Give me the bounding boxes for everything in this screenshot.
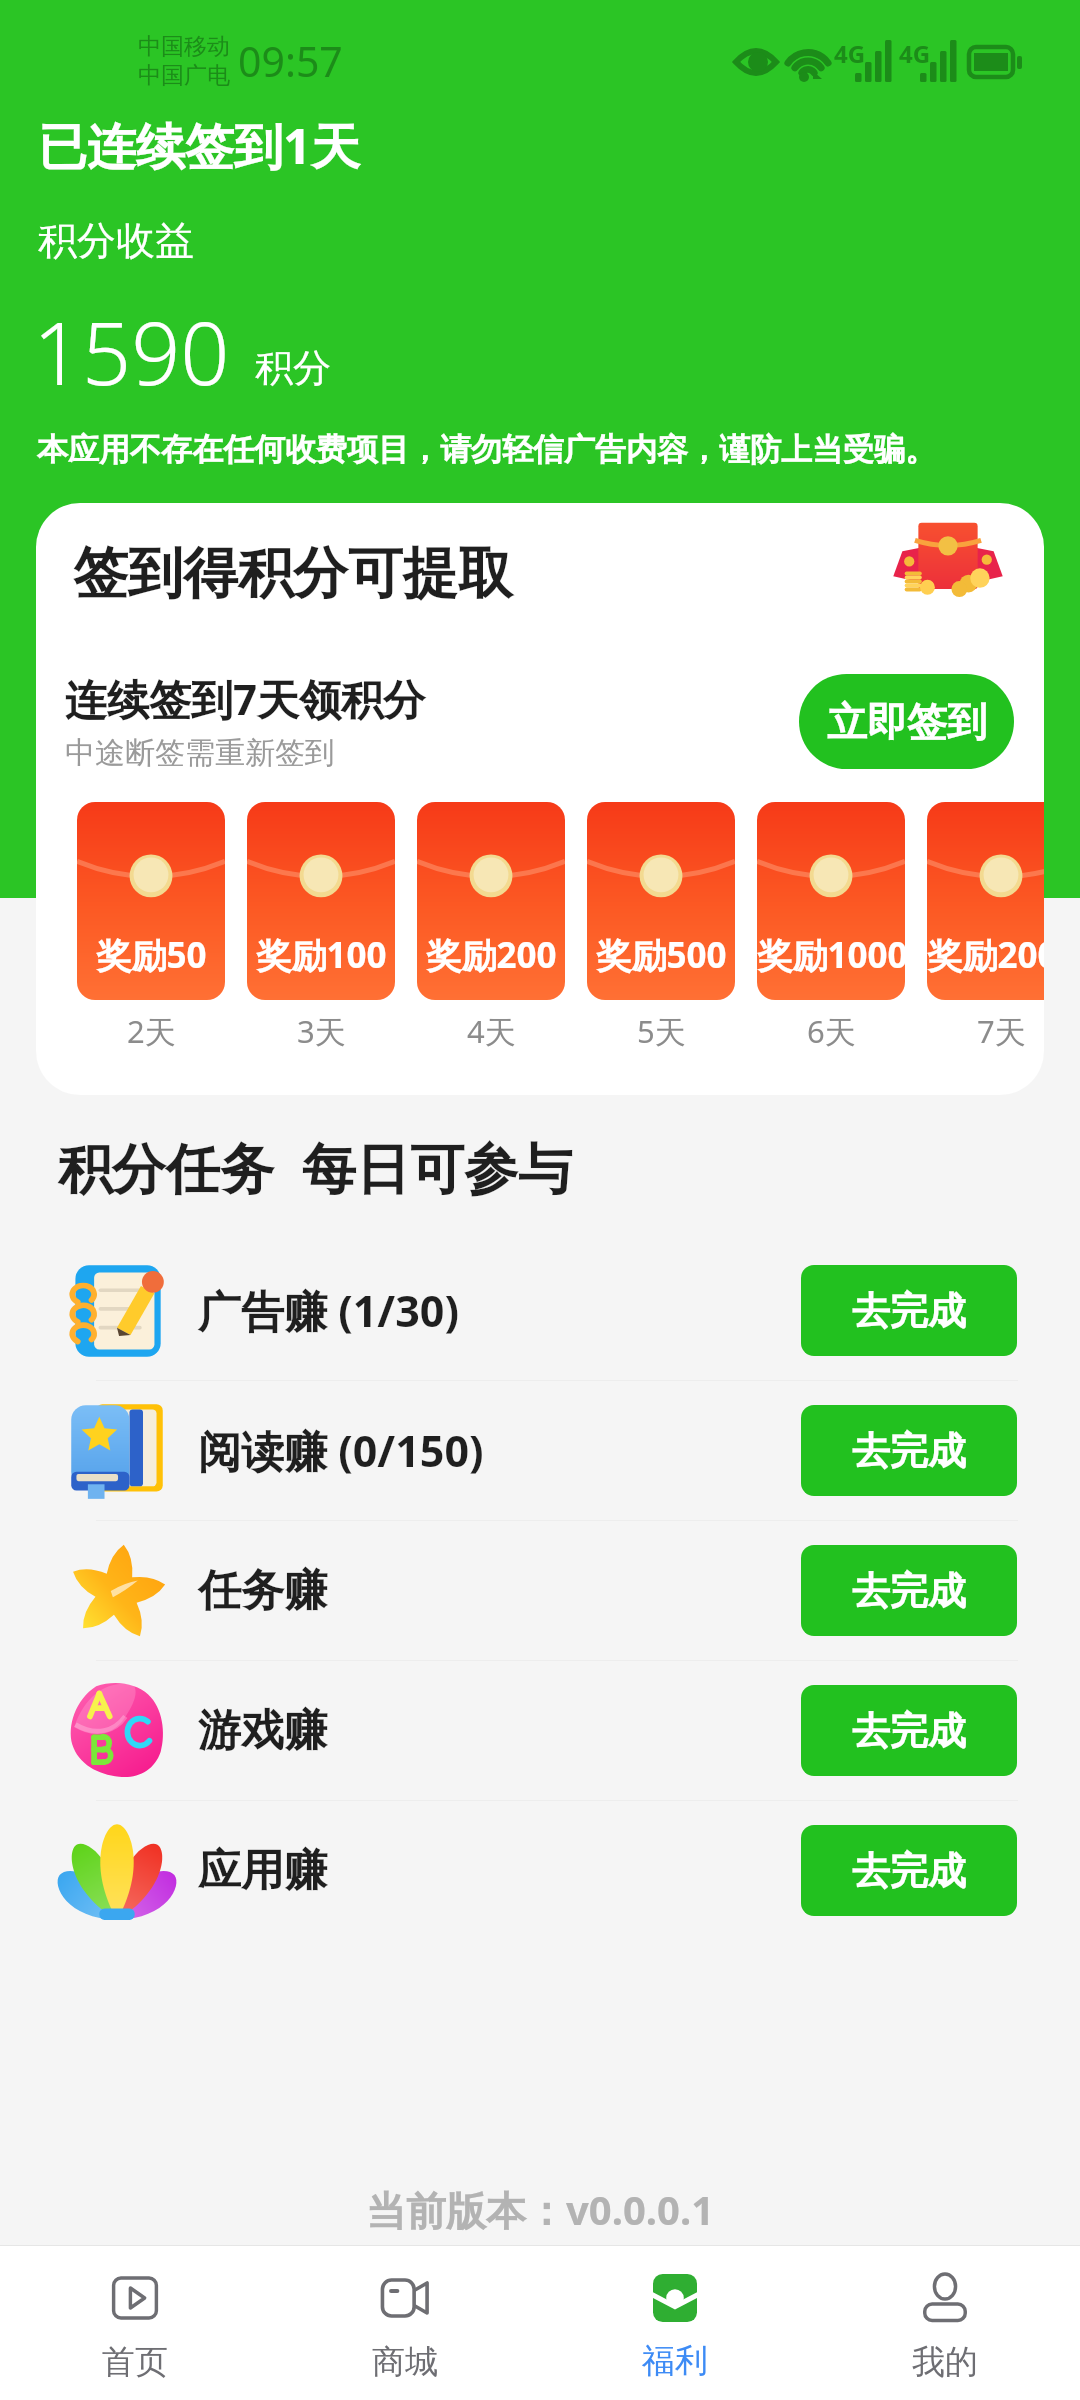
staticText: 去完成	[852, 1847, 966, 1895]
staticText: 当前版本：v0.0.0.1	[366, 2182, 715, 2237]
staticText: 签到得积分可提取	[73, 539, 513, 608]
staticText: 奖励200	[426, 931, 557, 979]
staticText: 任务赚	[198, 1564, 327, 1618]
button[interactable]: 应用赚	[0, 1801, 1080, 1940]
button[interactable]: 去完成	[801, 1405, 1017, 1496]
button[interactable]: 去完成	[801, 1265, 1017, 1356]
staticText: 奖励50	[96, 931, 207, 979]
staticText: 游戏赚	[198, 1704, 327, 1758]
staticText: 积分收益	[38, 216, 194, 265]
button[interactable]: 奖励500	[587, 802, 735, 1000]
button[interactable]: 去完成	[801, 1825, 1017, 1916]
staticText: 去完成	[852, 1287, 966, 1335]
staticText: 4G	[834, 37, 866, 70]
button[interactable]: 立即签到	[799, 674, 1014, 769]
staticText: 去完成	[852, 1427, 966, 1475]
staticText: 7天	[977, 1010, 1026, 1052]
staticText: 4天	[467, 1010, 516, 1052]
staticText: 广告赚 (1/30)	[198, 1281, 459, 1340]
staticText: 3天	[297, 1010, 346, 1052]
staticText: 奖励2000	[927, 931, 1044, 979]
button[interactable]: 奖励100	[247, 802, 395, 1000]
staticText: 1590	[33, 293, 230, 410]
staticText: 奖励1000	[757, 931, 905, 979]
staticText: 中途断签需重新签到	[65, 734, 335, 772]
button[interactable]: 奖励2000	[927, 802, 1044, 1000]
staticText: 商城	[372, 2341, 438, 2383]
button[interactable]: 去完成	[801, 1545, 1017, 1636]
staticText: 已连续签到1天	[38, 112, 361, 179]
staticText: 立即签到	[827, 697, 987, 747]
staticText: 本应用不存在任何收费项目，请勿轻信广告内容，谨防上当受骗。	[37, 430, 936, 469]
button[interactable]: Shop	[270, 2246, 540, 2400]
staticText: 中国广电	[138, 61, 230, 90]
button[interactable]: 广告赚 (1/30)	[0, 1241, 1080, 1380]
staticText: 积分任务 每日可参与	[58, 1130, 573, 1204]
staticText: 首页	[102, 2341, 168, 2383]
button[interactable]: 任务赚	[0, 1521, 1080, 1660]
staticText: 09:57	[238, 33, 343, 89]
button[interactable]: Home	[0, 2246, 270, 2400]
staticText: 中国移动	[138, 32, 230, 61]
button[interactable]: 奖励50	[77, 802, 225, 1000]
button[interactable]: 奖励1000	[757, 802, 905, 1000]
staticText: 福利	[642, 2340, 708, 2382]
staticText: 连续签到7天领积分	[65, 670, 426, 727]
button[interactable]: 游戏赚	[0, 1661, 1080, 1800]
staticText: 2天	[127, 1010, 176, 1052]
button[interactable]: 阅读赚 (0/150)	[0, 1381, 1080, 1520]
staticText: 奖励500	[596, 931, 727, 979]
staticText: 阅读赚 (0/150)	[198, 1421, 484, 1480]
button[interactable]: 去完成	[801, 1685, 1017, 1776]
staticText: 5天	[637, 1010, 686, 1052]
staticText: 我的	[912, 2341, 978, 2383]
staticText: 去完成	[852, 1707, 966, 1755]
staticText: 积分	[255, 344, 331, 392]
button[interactable]: Profile	[810, 2246, 1080, 2400]
button[interactable]: Rewards	[540, 2246, 810, 2400]
staticText: 去完成	[852, 1567, 966, 1615]
button[interactable]: 奖励200	[417, 802, 565, 1000]
staticText: 4G	[899, 37, 931, 70]
staticText: 奖励100	[256, 931, 387, 979]
staticText: 应用赚	[198, 1844, 327, 1898]
staticText: 6天	[807, 1010, 856, 1052]
